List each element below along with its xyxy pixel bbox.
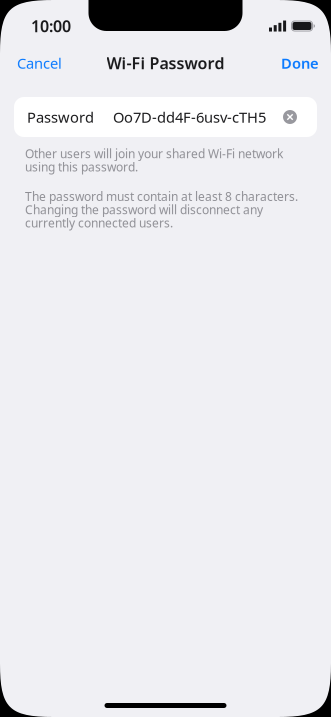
staticText: The password must contain at least 8 cha…: [25, 188, 298, 204]
staticText: Password: [27, 107, 94, 127]
button[interactable]: Cancel: [0, 46, 72, 80]
button[interactable]: Done: [271, 46, 331, 80]
staticText: Wi-Fi Password: [106, 52, 224, 74]
staticText: Cancel: [17, 53, 62, 73]
staticText: Done: [281, 53, 319, 73]
staticText: 10:00: [31, 15, 71, 37]
staticText: Oo7D-dd4F-6usv-cTH5: [113, 107, 266, 127]
staticText: Changing the password will disconnect an…: [25, 202, 263, 217]
button[interactable]: Clear text: [275, 97, 303, 137]
staticText: currently connected users.: [25, 215, 173, 231]
staticText: using this password.: [25, 159, 138, 175]
staticText: Other users will join your shared Wi-Fi …: [25, 146, 283, 162]
